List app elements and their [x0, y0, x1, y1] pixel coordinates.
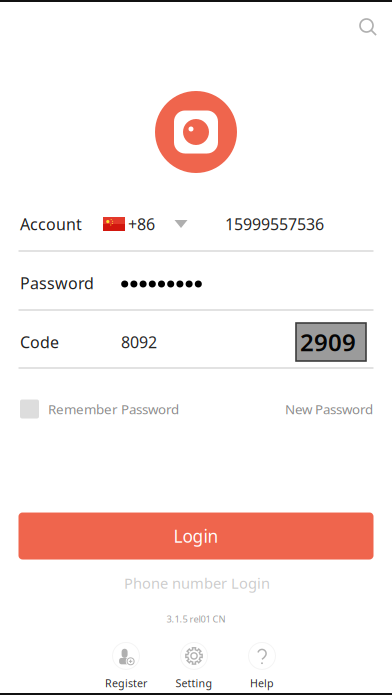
staticText: 2909	[300, 326, 356, 358]
staticText: 15999557536	[225, 213, 324, 235]
staticText: Remember Password	[48, 400, 179, 418]
button[interactable]: Phone number Login	[87, 570, 307, 596]
button[interactable]: Setting	[160, 642, 228, 690]
staticText: +86	[128, 213, 155, 235]
staticText: Code	[20, 331, 59, 353]
staticText: Login	[173, 524, 218, 547]
staticText: Setting	[175, 676, 212, 690]
button[interactable]: Remember Password	[20, 394, 179, 424]
staticText: Password	[20, 272, 94, 294]
button[interactable]: Search	[349, 8, 387, 46]
button[interactable]: New Password	[285, 394, 373, 424]
staticText: 8092	[121, 331, 157, 353]
staticText: Help	[250, 676, 274, 690]
button[interactable]: Refresh captcha	[296, 323, 366, 361]
staticText: Register	[105, 676, 147, 690]
staticText: Phone number Login	[124, 573, 270, 593]
staticText: Account	[20, 213, 82, 235]
staticText: New Password	[285, 400, 373, 418]
button[interactable]: Login	[18, 512, 373, 559]
button[interactable]: Register	[92, 642, 160, 690]
button[interactable]: Help	[228, 642, 296, 690]
staticText: 3.1.5 rel01 CN	[166, 613, 225, 625]
button[interactable]: Select country code	[168, 211, 194, 237]
